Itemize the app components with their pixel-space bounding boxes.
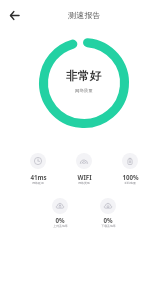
staticText: 下载丢包率 — [101, 224, 116, 228]
staticText: 100% — [122, 173, 139, 181]
staticText: 网络延迟 — [32, 181, 44, 185]
staticText: 测速报告 — [68, 10, 101, 20]
button[interactable]: 100% — [107, 153, 153, 185]
staticText: 网络类型 — [78, 181, 90, 185]
button[interactable]: 41ms — [15, 153, 61, 185]
button[interactable]: 0% — [36, 198, 84, 228]
staticText: 0% — [55, 216, 65, 224]
button[interactable]: 0% — [84, 198, 132, 228]
button[interactable]: Back — [4, 5, 24, 25]
staticText: 0% — [103, 216, 113, 224]
button[interactable]: WIFI — [61, 153, 107, 185]
staticText: 41ms — [30, 173, 47, 181]
staticText: 手机电量 — [124, 181, 136, 185]
staticText: WIFI — [77, 173, 92, 181]
staticText: 非常好 — [66, 69, 102, 84]
staticText: 网络质量 — [75, 88, 93, 94]
staticText: 上传丢包率 — [53, 224, 68, 228]
